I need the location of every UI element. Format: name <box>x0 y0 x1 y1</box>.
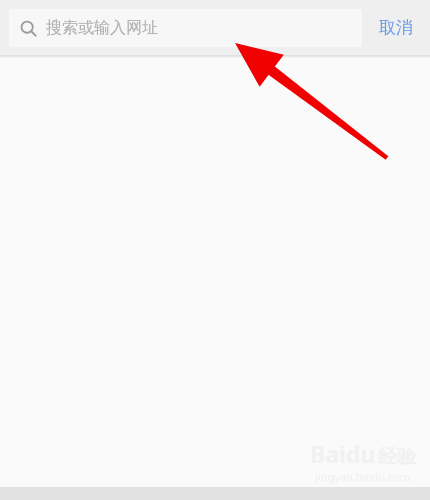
button[interactable]: 取消 <box>362 0 430 55</box>
other: Search <box>20 20 37 37</box>
button[interactable]: Search <box>9 9 362 47</box>
staticText: jingyan.baidu.com <box>315 469 411 484</box>
staticText: du <box>346 438 376 469</box>
staticText: 搜索或输入网址 <box>46 18 158 38</box>
staticText: 取消 <box>379 17 413 38</box>
staticText: 经验 <box>378 445 416 469</box>
staticText: Bai <box>310 438 346 469</box>
